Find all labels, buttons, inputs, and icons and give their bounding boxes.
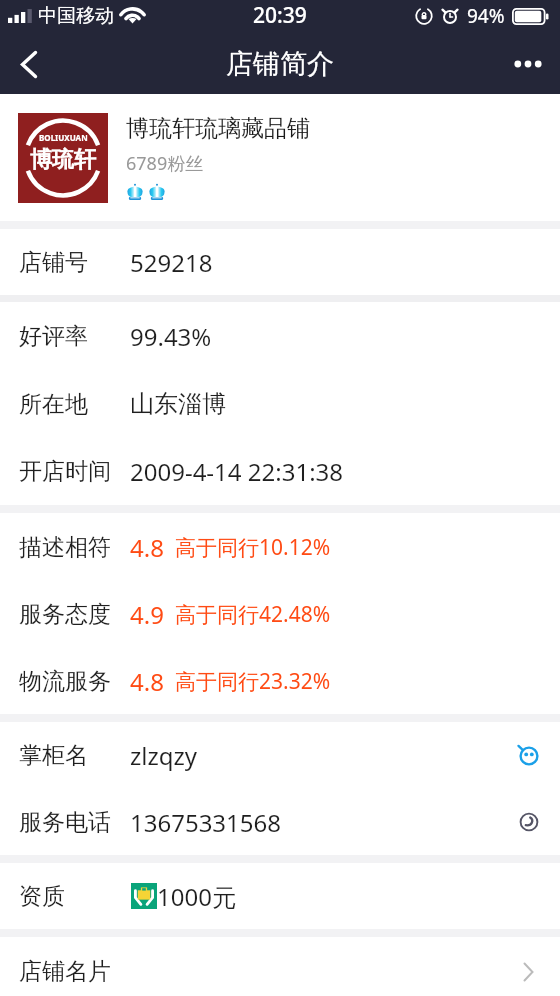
- staticText: 所在地: [19, 390, 88, 419]
- button[interactable]: 服务电话: [0, 789, 560, 855]
- staticText: 20:39: [253, 1, 307, 30]
- button[interactable]: More options: [496, 39, 560, 89]
- staticText: zlzqzy: [130, 739, 198, 772]
- staticText: 开店时间: [19, 457, 111, 486]
- staticText: 掌柜名: [19, 741, 88, 770]
- staticText: 99.43%: [130, 320, 212, 353]
- staticText: 4.8: [130, 665, 164, 698]
- staticText: 描述相符: [19, 533, 111, 562]
- staticText: 博琉轩琉璃藏品铺: [126, 114, 310, 143]
- button[interactable]: 物流服务: [0, 648, 560, 714]
- button[interactable]: 描述相符: [0, 513, 560, 581]
- staticText: 1000元: [157, 880, 236, 913]
- staticText: BOLIUXUAN: [39, 132, 88, 143]
- staticText: 资质: [19, 882, 65, 911]
- button[interactable]: 掌柜名: [0, 722, 560, 789]
- button[interactable]: 店铺名片: [0, 934, 560, 996]
- staticText: 2009-4-14 22:31:38: [130, 455, 344, 488]
- staticText: 94%: [467, 3, 505, 29]
- button[interactable]: Back: [0, 39, 58, 89]
- button[interactable]: Chat with seller: [512, 739, 546, 773]
- button[interactable]: Call service number: [512, 805, 546, 839]
- button[interactable]: 店铺号: [0, 229, 560, 295]
- button[interactable]: BOLIUXUAN: [0, 94, 560, 221]
- staticText: 服务态度: [19, 600, 111, 629]
- staticText: 4.8: [130, 531, 164, 564]
- staticText: 博琉轩: [30, 146, 96, 174]
- button[interactable]: 开店时间: [0, 438, 560, 505]
- staticText: 高于同行23.32%: [175, 667, 331, 696]
- staticText: 山东淄博: [130, 389, 226, 419]
- staticText: 529218: [130, 246, 213, 279]
- staticText: 13675331568: [130, 806, 282, 839]
- staticText: 店铺名片: [19, 957, 111, 986]
- staticText: 店铺号: [19, 248, 88, 277]
- staticText: 高于同行10.12%: [175, 533, 331, 562]
- button[interactable]: 好评率: [0, 302, 560, 370]
- button[interactable]: 服务态度: [0, 581, 560, 648]
- staticText: 店铺简介: [226, 47, 334, 81]
- staticText: 服务电话: [19, 808, 111, 837]
- staticText: 好评率: [19, 322, 88, 351]
- staticText: 中国移动: [38, 4, 114, 28]
- button[interactable]: 所在地: [0, 370, 560, 438]
- staticText: 物流服务: [19, 667, 111, 696]
- staticText: 高于同行42.48%: [175, 600, 331, 629]
- staticText: 6789粉丝: [126, 151, 204, 176]
- button[interactable]: 资质: [0, 863, 560, 929]
- staticText: 4.9: [130, 598, 164, 631]
